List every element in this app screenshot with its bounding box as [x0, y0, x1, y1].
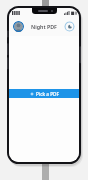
staticText: Night PDF Reader [24, 23, 64, 30]
staticText: Pick a PDF [36, 91, 59, 97]
button[interactable]: Night mode [64, 21, 75, 32]
button[interactable]: Pick a PDF [9, 89, 79, 98]
button[interactable]: Account [13, 21, 24, 32]
